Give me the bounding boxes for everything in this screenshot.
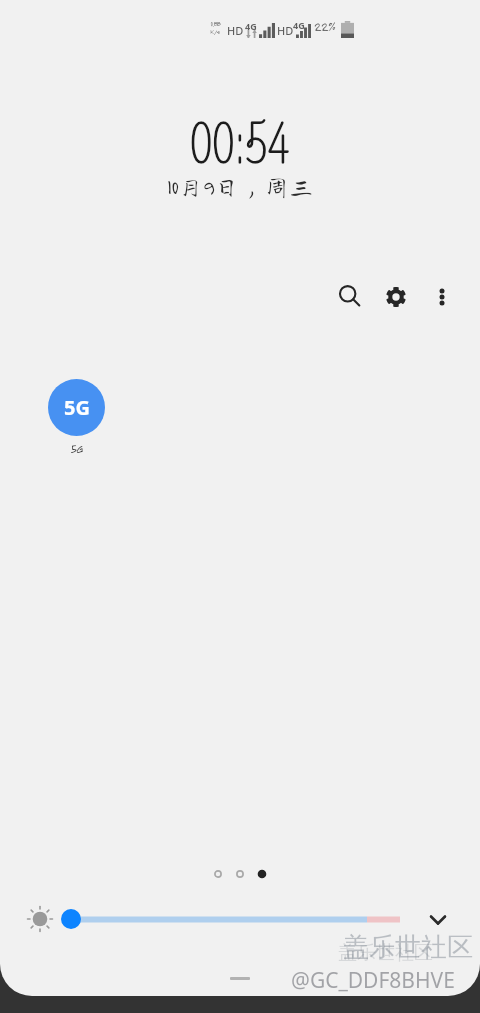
staticText: 0.8B xyxy=(210,20,221,28)
staticText: 盖乐世社区 xyxy=(338,941,433,965)
staticText: 5G xyxy=(64,394,90,421)
button[interactable]: Search xyxy=(331,278,367,314)
staticText: 4G xyxy=(245,20,257,32)
staticText: 00:54 xyxy=(190,113,291,179)
staticText: @GC_DDF8BHVE xyxy=(291,966,455,995)
staticText: 00:54 xyxy=(190,113,291,179)
staticText: 22% xyxy=(314,19,336,34)
staticText: 盖乐世社区 xyxy=(343,931,473,964)
button[interactable]: Expand xyxy=(422,904,454,936)
staticText: 5G xyxy=(70,441,83,456)
button[interactable]: More options xyxy=(424,279,460,315)
staticText: HD xyxy=(277,23,294,38)
staticText: K/s xyxy=(210,28,220,36)
button[interactable]: Brightness xyxy=(27,906,53,932)
staticText: 4G xyxy=(293,19,305,31)
button[interactable]: Settings xyxy=(378,279,414,315)
button[interactable]: 5G xyxy=(48,379,105,436)
staticText: 10月9日，周三 xyxy=(167,174,314,199)
staticText: HD xyxy=(227,23,244,38)
button[interactable]: Brightness slider xyxy=(61,909,81,929)
